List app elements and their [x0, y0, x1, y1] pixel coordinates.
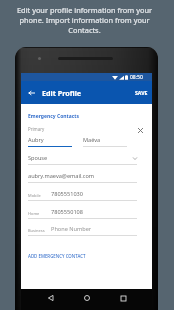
staticText: Edit your profile information from your …: [12, 5, 157, 35]
staticText: Aubry: [28, 136, 44, 144]
button[interactable]: Business: [28, 225, 137, 236]
staticText: 7805551030: [51, 190, 83, 198]
staticText: Mobile: [28, 193, 41, 198]
button[interactable]: Back: [26, 87, 37, 98]
button[interactable]: Home: [28, 208, 137, 219]
staticText: 7805550108: [51, 208, 83, 216]
staticText: Home: [28, 211, 40, 216]
button[interactable]: Back: [43, 291, 57, 305]
staticText: Primary: [28, 126, 45, 132]
staticText: Spouse: [28, 154, 48, 162]
staticText: Maëva: [83, 136, 101, 144]
button[interactable]: ADD EMERGENCY CONTACT: [26, 250, 88, 262]
staticText: Business: [28, 228, 45, 233]
button[interactable]: Spouse: [28, 154, 137, 165]
staticText: SAVE: [135, 89, 148, 96]
staticText: ADD EMERGENCY CONTACT: [28, 253, 86, 259]
staticText: Phone Number: [51, 225, 92, 233]
button[interactable]: aubry.maeva@email.com: [28, 172, 137, 183]
staticText: Edit Profile: [42, 88, 82, 98]
button[interactable]: Remove contact: [135, 125, 146, 136]
button[interactable]: Home: [80, 291, 94, 305]
button[interactable]: Aubry: [28, 136, 72, 147]
button[interactable]: SAVE: [131, 85, 152, 100]
staticText: aubry.maeva@email.com: [28, 172, 95, 180]
staticText: Emergency Contacts: [28, 113, 79, 120]
button[interactable]: Recent apps: [116, 291, 130, 305]
button[interactable]: Maëva: [83, 136, 127, 147]
button[interactable]: Mobile: [28, 190, 137, 201]
staticText: 08:50: [130, 74, 143, 81]
